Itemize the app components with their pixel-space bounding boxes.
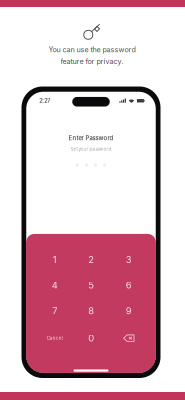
button[interactable]: 3: [112, 249, 146, 271]
button[interactable]: 1: [38, 249, 72, 271]
button[interactable]: 9: [112, 300, 146, 322]
staticText: 2:27: [39, 97, 50, 104]
staticText: 9: [126, 305, 132, 317]
button[interactable]: 7: [38, 300, 72, 322]
staticText: 7: [52, 305, 57, 317]
staticText: 1: [53, 254, 57, 265]
staticText: feature for privacy.: [60, 57, 123, 66]
button[interactable]: 2: [74, 249, 108, 271]
staticText: 3: [126, 254, 132, 265]
button[interactable]: 4: [38, 274, 72, 296]
staticText: 5: [88, 279, 94, 291]
button[interactable]: 8: [74, 300, 108, 322]
staticText: 6: [126, 279, 132, 291]
button[interactable]: Cancel: [38, 327, 72, 349]
staticText: 8: [88, 305, 94, 317]
staticText: Enter Password: [68, 135, 113, 142]
staticText: You can use the password: [48, 45, 135, 54]
button[interactable]: 5: [74, 274, 108, 296]
button[interactable]: Delete: [112, 327, 146, 349]
staticText: Cancel: [47, 335, 63, 341]
staticText: Set your password: [70, 146, 111, 152]
staticText: 2: [88, 254, 94, 265]
staticText: 4: [52, 279, 58, 291]
button[interactable]: 0: [74, 327, 108, 349]
button[interactable]: 6: [112, 274, 146, 296]
staticText: 0: [88, 332, 94, 344]
